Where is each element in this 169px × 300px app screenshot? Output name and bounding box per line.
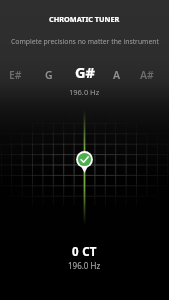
staticText: Complete precisions no matter the instru… — [11, 37, 159, 46]
staticText: CHROMATIC TUNER — [49, 14, 120, 24]
staticText: 196.0 Hz — [68, 260, 101, 271]
staticText: A# — [140, 68, 154, 82]
staticText: 196.0 Hz — [69, 87, 100, 97]
staticText: 0 CT — [72, 244, 97, 260]
button[interactable]: A# — [130, 64, 164, 86]
button[interactable]: A — [100, 64, 134, 86]
button[interactable]: G# — [68, 61, 102, 83]
staticText: A — [113, 68, 121, 82]
staticText: E# — [9, 68, 22, 82]
button[interactable]: G — [32, 64, 66, 86]
staticText: G — [45, 68, 53, 82]
staticText: G# — [75, 62, 95, 82]
button[interactable]: E# — [0, 64, 32, 86]
